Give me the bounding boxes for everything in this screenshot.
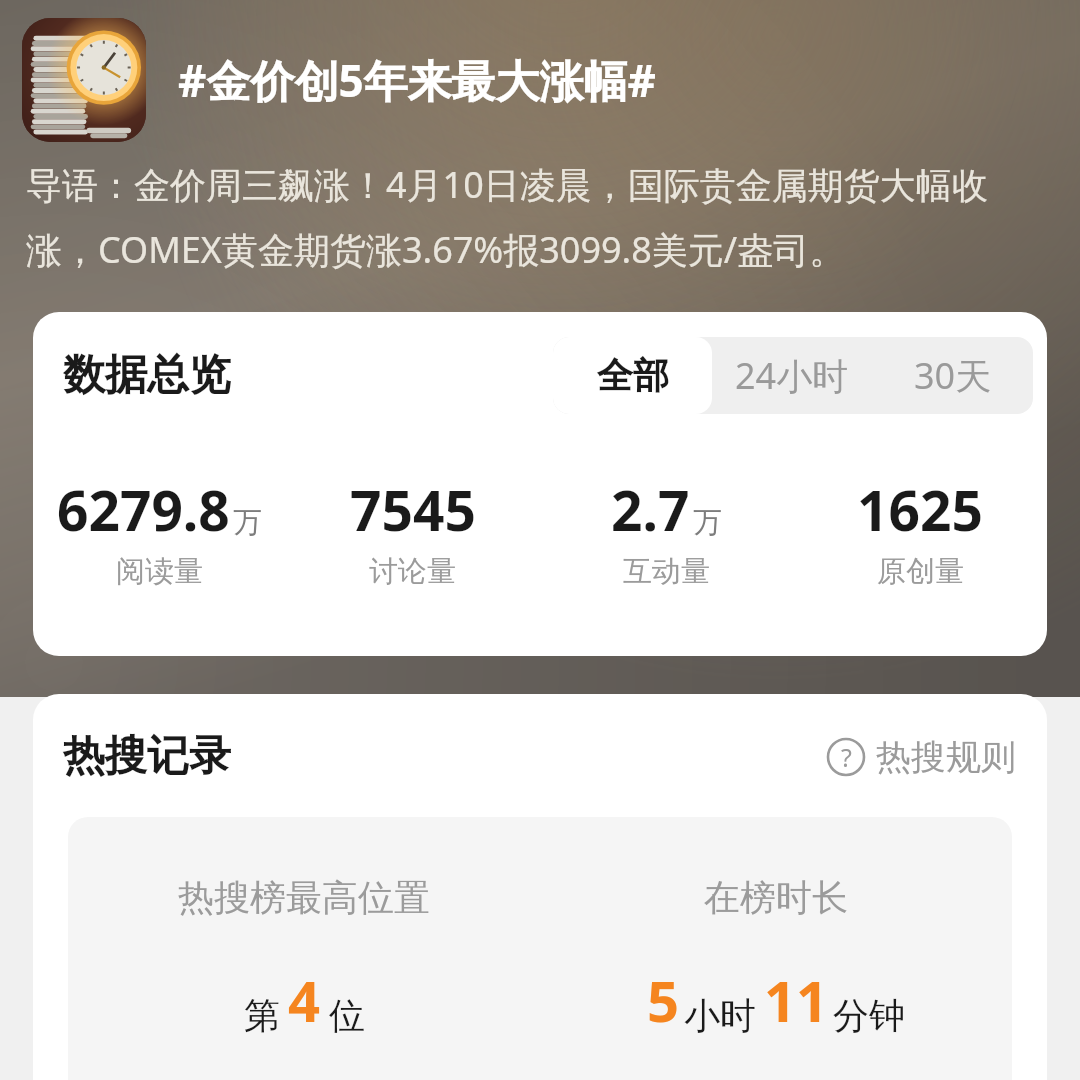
staticText: 讨论量 [369, 553, 456, 590]
staticText: 热搜规则 [876, 735, 1016, 779]
staticText: 24小时 [735, 351, 849, 400]
button[interactable]: 热搜规则说明 [822, 731, 1020, 783]
staticText: 在榜时长 [704, 875, 848, 920]
staticText: 万 [233, 504, 262, 541]
button[interactable]: 热搜榜最高位置 [68, 817, 540, 1080]
staticText: 万 [693, 504, 722, 541]
button[interactable]: 全部 [553, 337, 712, 414]
staticText: 位 [329, 993, 365, 1038]
staticText: 导语：金价周三飙涨！4月10日凌晨，国际贵金属期货大幅收涨，COMEX黄金期货涨… [26, 160, 1040, 274]
staticText: 5 [647, 962, 680, 1038]
staticText: 30天 [914, 351, 992, 400]
staticText: ? [841, 740, 852, 774]
staticText: 全部 [597, 353, 669, 398]
other: 热搜规则说明 [826, 737, 866, 777]
button[interactable]: 30天 [872, 337, 1033, 414]
staticText: 7545 [350, 472, 476, 547]
staticText: #金价创5年来最大涨幅# [178, 50, 657, 110]
staticText: 数据总览 [63, 349, 231, 402]
staticText: 互动量 [623, 553, 710, 590]
staticText: 第 [244, 993, 280, 1038]
button[interactable]: 在榜时长 [540, 817, 1012, 1080]
staticText: 1625 [857, 472, 983, 547]
staticText: 原创量 [877, 553, 964, 590]
button[interactable]: #金价创5年来最大涨幅# [22, 18, 1060, 142]
staticText: 4 [288, 962, 321, 1038]
staticText: 热搜记录 [63, 730, 231, 783]
staticText: 阅读量 [116, 553, 203, 590]
staticText: 11 [764, 962, 829, 1038]
staticText: 6279.8 [57, 472, 230, 547]
staticText: 2.7 [611, 472, 690, 547]
staticText: 分钟 [833, 993, 905, 1038]
button[interactable]: 24小时 [712, 337, 872, 414]
staticText: 小时 [684, 993, 756, 1038]
staticText: 热搜榜最高位置 [178, 875, 430, 920]
